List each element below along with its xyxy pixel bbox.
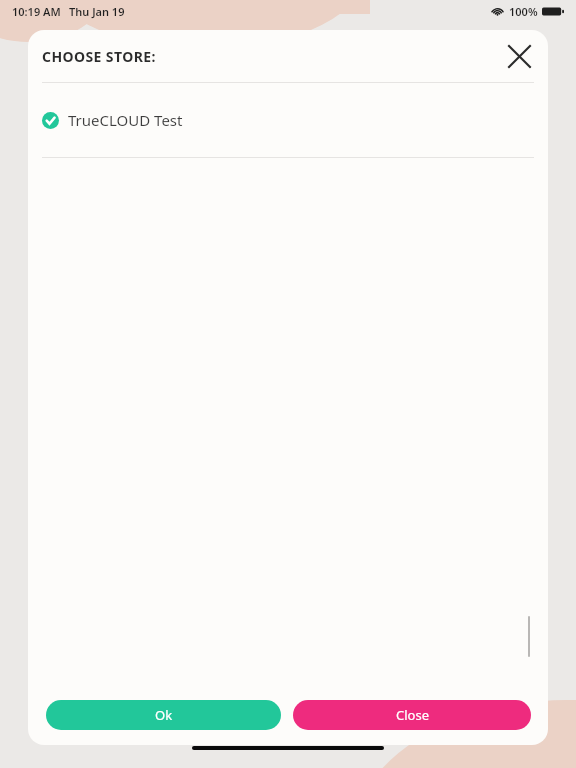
staticText: TrueCLOUD Test: [68, 110, 183, 130]
button[interactable]: TrueCLOUD Test: [28, 83, 548, 157]
staticText: CHOOSE STORE:: [42, 47, 156, 66]
staticText: 10:19 AM: [12, 4, 61, 19]
staticText: Ok: [155, 706, 173, 724]
button[interactable]: Close: [293, 700, 531, 730]
button[interactable]: Close: [502, 39, 536, 73]
staticText: Close: [396, 706, 429, 724]
staticText: Thu Jan 19: [69, 4, 125, 19]
button[interactable]: Ok: [46, 700, 281, 730]
staticText: 100%: [509, 4, 538, 19]
